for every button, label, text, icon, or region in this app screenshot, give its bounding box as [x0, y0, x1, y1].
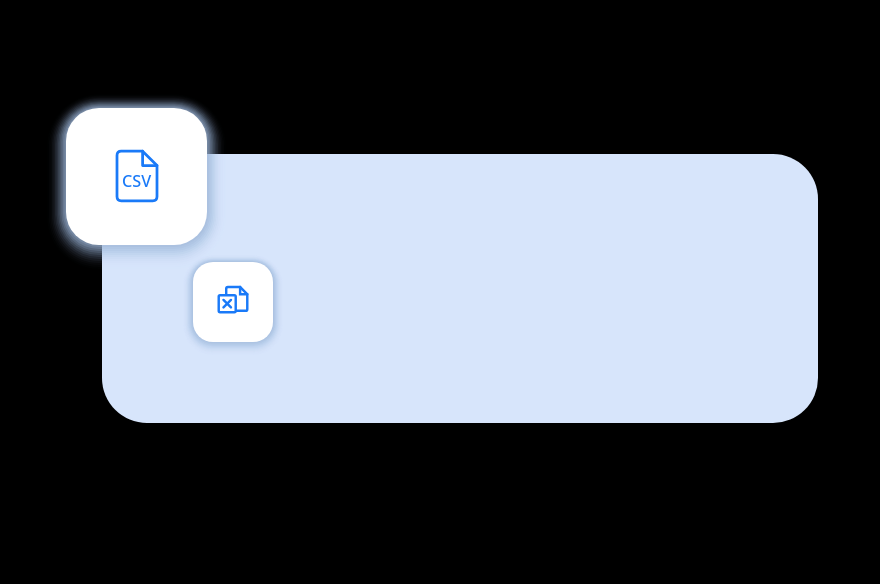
button[interactable]: Excel file — [193, 262, 273, 342]
button[interactable]: CSV file — [66, 108, 207, 245]
button[interactable] — [102, 154, 818, 423]
